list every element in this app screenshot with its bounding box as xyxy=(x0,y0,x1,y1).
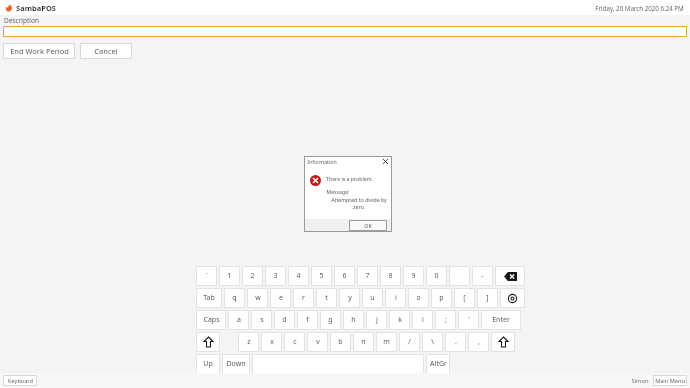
button[interactable]: [ xyxy=(454,288,475,308)
staticText: End Work Period xyxy=(10,46,69,56)
staticText: ] xyxy=(486,293,489,303)
button[interactable]: Main Menu xyxy=(653,375,687,386)
button[interactable]: AltGr xyxy=(426,354,450,374)
button[interactable]: f xyxy=(297,310,318,330)
button[interactable]: Shift xyxy=(491,332,515,352)
button[interactable]: u xyxy=(362,288,383,308)
button[interactable]: c xyxy=(284,332,305,352)
button[interactable]: k xyxy=(389,310,410,330)
button[interactable]: 3 xyxy=(265,266,286,286)
button[interactable] xyxy=(252,354,424,374)
button[interactable]: Caps xyxy=(196,310,226,330)
staticText: Down xyxy=(226,359,246,369)
staticText: 5 xyxy=(319,271,324,281)
button[interactable]: Cancel xyxy=(80,43,132,59)
button[interactable]: 0 xyxy=(426,266,447,286)
button[interactable]: i xyxy=(385,288,406,308)
button[interactable]: b xyxy=(330,332,351,352)
button[interactable]: 8 xyxy=(380,266,401,286)
staticText: r xyxy=(302,293,305,303)
button[interactable]: 4 xyxy=(288,266,309,286)
staticText: c xyxy=(293,337,297,347)
staticText: o xyxy=(416,293,421,303)
button[interactable]: / xyxy=(399,332,420,352)
staticText: 0 xyxy=(434,271,439,281)
staticText: s xyxy=(260,315,264,325)
staticText: j xyxy=(376,315,378,325)
button[interactable]: 9 xyxy=(403,266,424,286)
button[interactable]: s xyxy=(251,310,272,330)
button[interactable]: Up xyxy=(196,354,220,374)
button[interactable]: Keyboard xyxy=(3,375,37,386)
button[interactable]: 6 xyxy=(334,266,355,286)
button[interactable]: , xyxy=(468,332,489,352)
staticText: \ xyxy=(431,337,434,347)
button[interactable]: q xyxy=(224,288,245,308)
button[interactable]: v xyxy=(307,332,328,352)
button[interactable]: y xyxy=(339,288,360,308)
staticText: 6 xyxy=(342,271,347,281)
staticText: d xyxy=(282,315,287,325)
button[interactable]: \ xyxy=(422,332,443,352)
button[interactable]: g xyxy=(320,310,341,330)
button[interactable]: h xyxy=(343,310,364,330)
button[interactable]: Backspace xyxy=(495,266,525,286)
button[interactable]: Enter xyxy=(481,310,521,330)
button[interactable]: z xyxy=(238,332,259,352)
staticText: There is a problem. xyxy=(326,175,373,182)
button[interactable]: d xyxy=(274,310,295,330)
button[interactable]: a xyxy=(228,310,249,330)
staticText: Keyboard xyxy=(8,377,33,385)
button[interactable]: - xyxy=(472,266,493,286)
button[interactable]: End Work Period xyxy=(3,43,75,59)
staticText: q xyxy=(232,293,237,303)
staticText: Cancel xyxy=(94,46,118,56)
button[interactable]: ' xyxy=(458,310,479,330)
button[interactable]: ] xyxy=(477,288,498,308)
staticText: 9 xyxy=(411,271,416,281)
staticText: b xyxy=(338,337,343,347)
staticText: w xyxy=(255,293,261,303)
button[interactable]: OK xyxy=(349,220,387,231)
button[interactable]: t xyxy=(316,288,337,308)
staticText: 8 xyxy=(388,271,393,281)
button[interactable]: 2 xyxy=(242,266,263,286)
staticText: , xyxy=(478,337,480,347)
button[interactable]: w xyxy=(247,288,268,308)
button[interactable]: m xyxy=(376,332,397,352)
button[interactable]: r xyxy=(293,288,314,308)
staticText: a xyxy=(237,315,241,325)
button[interactable]: j xyxy=(366,310,387,330)
staticText: 1 xyxy=(227,271,232,281)
staticText: k xyxy=(398,315,402,325)
staticText: t xyxy=(325,293,328,303)
button[interactable]: 7 xyxy=(357,266,378,286)
staticText: u xyxy=(370,293,375,303)
staticText: . xyxy=(455,337,457,347)
button[interactable] xyxy=(3,26,687,37)
button[interactable]: l xyxy=(412,310,433,330)
staticText: Tab xyxy=(203,293,215,303)
staticText: Description xyxy=(4,16,39,25)
button[interactable]: e xyxy=(270,288,291,308)
button[interactable]: o xyxy=(408,288,429,308)
button[interactable]: Tab xyxy=(196,288,222,308)
button[interactable]: Shift xyxy=(196,332,220,352)
button[interactable]: Down xyxy=(222,354,250,374)
button[interactable]: 1 xyxy=(219,266,240,286)
staticText: Friday, 20 March 2020 6.24 PM xyxy=(595,4,684,12)
button[interactable]: 5 xyxy=(311,266,332,286)
staticText: Up xyxy=(203,359,213,369)
button[interactable]: Close xyxy=(382,158,389,165)
button[interactable]: ; xyxy=(435,310,456,330)
staticText: p xyxy=(439,293,444,303)
button[interactable]: p xyxy=(431,288,452,308)
button[interactable]: x xyxy=(261,332,282,352)
button[interactable]: At sign xyxy=(500,288,525,308)
button[interactable]: n xyxy=(353,332,374,352)
staticText: Information xyxy=(307,158,337,165)
button[interactable]: . xyxy=(445,332,466,352)
button[interactable]: ` xyxy=(196,266,217,286)
button[interactable] xyxy=(449,266,470,286)
staticText: Message: xyxy=(326,188,350,195)
